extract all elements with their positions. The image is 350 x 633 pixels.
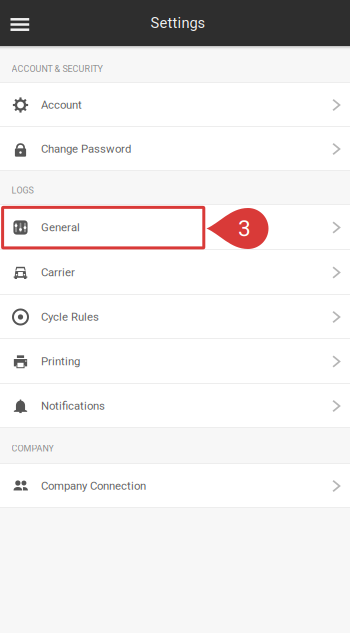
button[interactable]: Change Password (0, 127, 350, 171)
staticText: Change Password (41, 142, 131, 156)
staticText: Printing (41, 355, 80, 368)
button[interactable]: Printing (0, 339, 350, 384)
staticText: LOGS (11, 185, 33, 196)
staticText: Carrier (41, 266, 75, 279)
button[interactable]: Company Connection (0, 464, 350, 508)
staticText: Company Connection (41, 479, 146, 493)
staticText: 3 (238, 215, 251, 242)
staticText: General (41, 221, 80, 234)
staticText: Notifications (41, 399, 105, 413)
button[interactable]: Account (0, 83, 350, 127)
button[interactable]: General (0, 205, 350, 250)
staticText: Cycle Rules (41, 310, 99, 324)
button[interactable]: Menu (0, 0, 52, 46)
staticText: COMPANY (11, 443, 53, 454)
button[interactable]: Carrier (0, 250, 350, 295)
button[interactable]: Cycle Rules (0, 295, 350, 339)
staticText: Settings (150, 14, 205, 32)
staticText: ACCOUNT & SECURITY (11, 64, 102, 74)
button[interactable]: Notifications (0, 384, 350, 428)
staticText: Account (41, 98, 82, 112)
